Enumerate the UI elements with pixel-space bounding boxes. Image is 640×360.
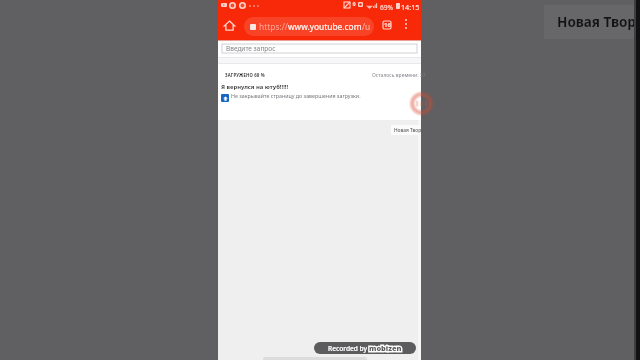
button[interactable]: Home [223, 19, 236, 32]
staticText: www.youtube.com [288, 21, 362, 32]
staticText: Recorded by [328, 344, 369, 353]
staticText: 69% [380, 3, 394, 12]
staticText: Введите запрос [226, 44, 276, 53]
staticText: 16 [384, 21, 391, 29]
button[interactable]: More options [400, 18, 412, 30]
staticText: mobizen [369, 343, 402, 353]
button[interactable]: Введите запрос [222, 44, 417, 53]
button[interactable]: https:// [244, 17, 374, 36]
staticText: /u [362, 21, 371, 32]
staticText: Новая Творч [394, 127, 421, 134]
staticText: https:// [259, 21, 288, 32]
staticText: ЗАГРУЖЕНО 68 % [225, 72, 265, 78]
button[interactable]: Tabs [381, 19, 393, 31]
staticText: Осталось времени: 37 [372, 72, 426, 79]
staticText: Новая Творч [557, 13, 640, 31]
staticText: 14:15 [401, 2, 420, 12]
staticText: Я вернулся на ютуб!!!!! [221, 83, 289, 91]
staticText: Не закрывайте страницу до завершения заг… [231, 92, 361, 99]
staticText: mobizen [369, 343, 402, 353]
